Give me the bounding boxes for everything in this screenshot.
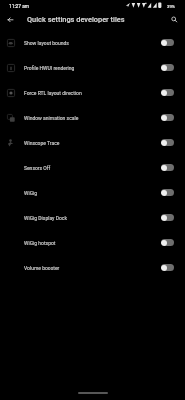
button[interactable]: Search: [167, 13, 182, 28]
staticText: Sensors Off: [24, 165, 161, 171]
staticText: Volume booster: [24, 265, 161, 271]
button[interactable]: Volume booster: [0, 255, 185, 280]
button[interactable]: Toggle: [161, 64, 174, 71]
staticText: Profile HWUI rendering: [24, 65, 161, 71]
staticText: 39%: [167, 4, 175, 9]
button[interactable]: WiGig: [0, 180, 185, 205]
staticText: 11:27 am: [9, 4, 29, 10]
button[interactable]: Back: [3, 13, 18, 28]
button[interactable]: Toggle: [161, 89, 174, 96]
staticText: Winscope Trace: [24, 140, 161, 146]
button[interactable]: Force RTL layout direction: [0, 80, 185, 105]
button[interactable]: Sensors Off: [0, 155, 185, 180]
staticText: WiGig hotspot: [24, 240, 161, 246]
button[interactable]: Toggle: [161, 164, 174, 171]
button[interactable]: Window animation scale: [0, 105, 185, 130]
staticText: Quick settings developer tiles: [27, 15, 125, 24]
staticText: Window animation scale: [24, 115, 161, 121]
button[interactable]: Toggle: [161, 214, 174, 221]
button[interactable]: Toggle: [161, 114, 174, 121]
button[interactable]: WiGig Display Dock: [0, 205, 185, 230]
button[interactable]: Toggle: [161, 264, 174, 271]
staticText: WiGig Display Dock: [24, 215, 161, 221]
button[interactable]: Profile HWUI rendering: [0, 55, 185, 80]
button[interactable]: Toggle: [161, 239, 174, 246]
button[interactable]: Toggle: [161, 39, 174, 46]
staticText: WiGig: [24, 190, 161, 196]
button[interactable]: Toggle: [161, 189, 174, 196]
staticText: Show layout bounds: [24, 40, 161, 46]
button[interactable]: WiGig hotspot: [0, 230, 185, 255]
button[interactable]: Toggle: [161, 139, 174, 146]
button[interactable]: Winscope Trace: [0, 130, 185, 155]
staticText: Force RTL layout direction: [24, 90, 161, 96]
button[interactable]: Show layout bounds: [0, 30, 185, 55]
